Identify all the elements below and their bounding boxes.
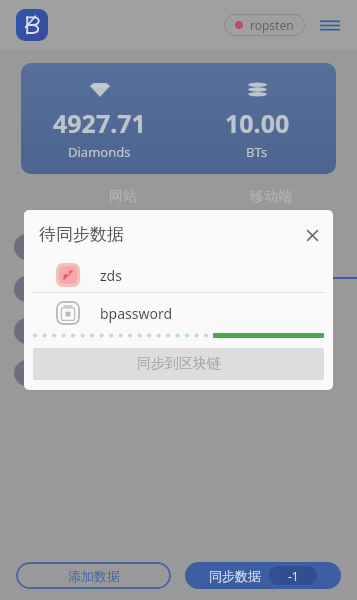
button[interactable]: ropsten <box>224 14 305 36</box>
staticText: 10.00 <box>225 106 290 140</box>
button[interactable]: Menu <box>319 14 341 36</box>
staticText: 移动端 <box>250 188 292 206</box>
staticText: JackMa <box>54 322 101 341</box>
staticText: oktest <box>54 280 95 299</box>
staticText: 网站 <box>109 188 137 206</box>
staticText: 4927.71 <box>53 106 146 140</box>
button[interactable]: 添加数据 <box>16 562 171 589</box>
staticText: -1 <box>288 568 299 584</box>
button[interactable]: App logo <box>16 9 48 41</box>
staticText: test-v9.1 <box>54 238 111 257</box>
button[interactable]: Close <box>301 224 323 246</box>
button[interactable]: 4927.71 <box>21 63 336 174</box>
button[interactable]: 同步数据 <box>185 562 341 589</box>
staticText: BTs <box>246 143 268 161</box>
staticText: Diamonds <box>68 143 131 161</box>
staticText: 待同步数据 <box>39 224 124 245</box>
staticText: 同步到区块链 <box>137 355 221 373</box>
staticText: bpassword <box>100 304 173 323</box>
staticText: 添加数据 <box>68 568 120 584</box>
staticText: ropsten <box>250 17 294 33</box>
staticText: 同步数据 <box>209 568 261 584</box>
button[interactable]: bpassword <box>24 293 333 333</box>
button[interactable]: zds <box>24 258 333 292</box>
button[interactable]: 同步到区块链 <box>33 348 324 380</box>
staticText: zds <box>54 364 76 383</box>
staticText: zds <box>100 266 122 285</box>
